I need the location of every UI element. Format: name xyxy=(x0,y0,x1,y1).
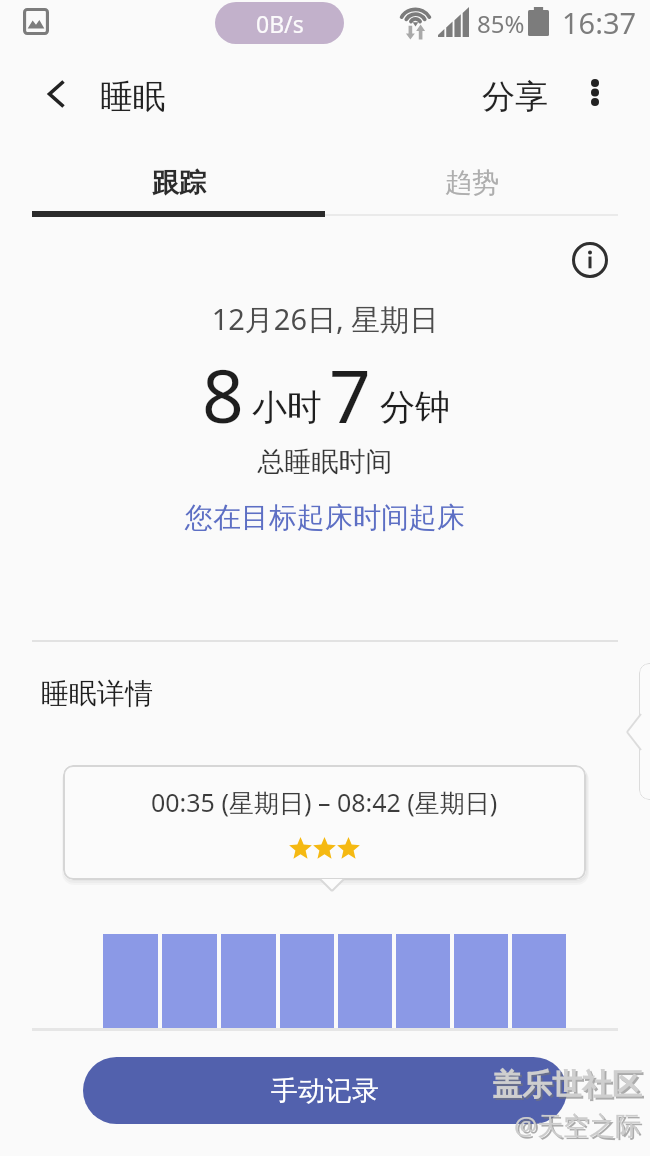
staticText: 盖乐世社区 xyxy=(492,1066,642,1104)
staticText: 睡眠详情 xyxy=(41,676,153,711)
staticText: 8 xyxy=(202,345,244,444)
button[interactable]: 分享 xyxy=(482,76,548,118)
button[interactable] xyxy=(63,765,586,880)
staticText: 85% xyxy=(477,7,525,40)
staticText: 小时 xyxy=(252,385,322,429)
staticText: 0B/s xyxy=(256,8,304,39)
staticText: 趋势 xyxy=(445,166,499,200)
staticText: 12月26日, 星期日 xyxy=(0,299,650,339)
button[interactable]: 手动记录 xyxy=(83,1057,567,1124)
staticText: 分钟 xyxy=(380,385,450,429)
staticText: 盖乐世社区 xyxy=(494,1068,644,1106)
button[interactable]: 您在目标起床时间起床 xyxy=(0,500,650,535)
button[interactable]: 跟踪 xyxy=(32,150,325,216)
staticText: 00:35 (星期日) – 08:42 (星期日) xyxy=(151,785,498,819)
staticText: @天空之际 xyxy=(514,1107,642,1143)
staticText: 您在目标起床时间起床 xyxy=(0,500,650,535)
staticText: @天空之际 xyxy=(516,1109,644,1145)
button[interactable]: Information xyxy=(566,236,614,284)
staticText: 7 xyxy=(329,345,371,444)
staticText: 总睡眠时间 xyxy=(0,445,650,479)
staticText: 睡眠 xyxy=(100,76,166,118)
button[interactable]: 趋势 xyxy=(325,150,618,216)
staticText: 16:37 xyxy=(562,3,637,42)
button[interactable]: More options xyxy=(567,64,623,120)
staticText: 分享 xyxy=(482,76,548,118)
staticText: 手动记录 xyxy=(271,1074,379,1108)
button[interactable]: Back xyxy=(26,64,86,124)
staticText: 跟踪 xyxy=(152,166,206,200)
